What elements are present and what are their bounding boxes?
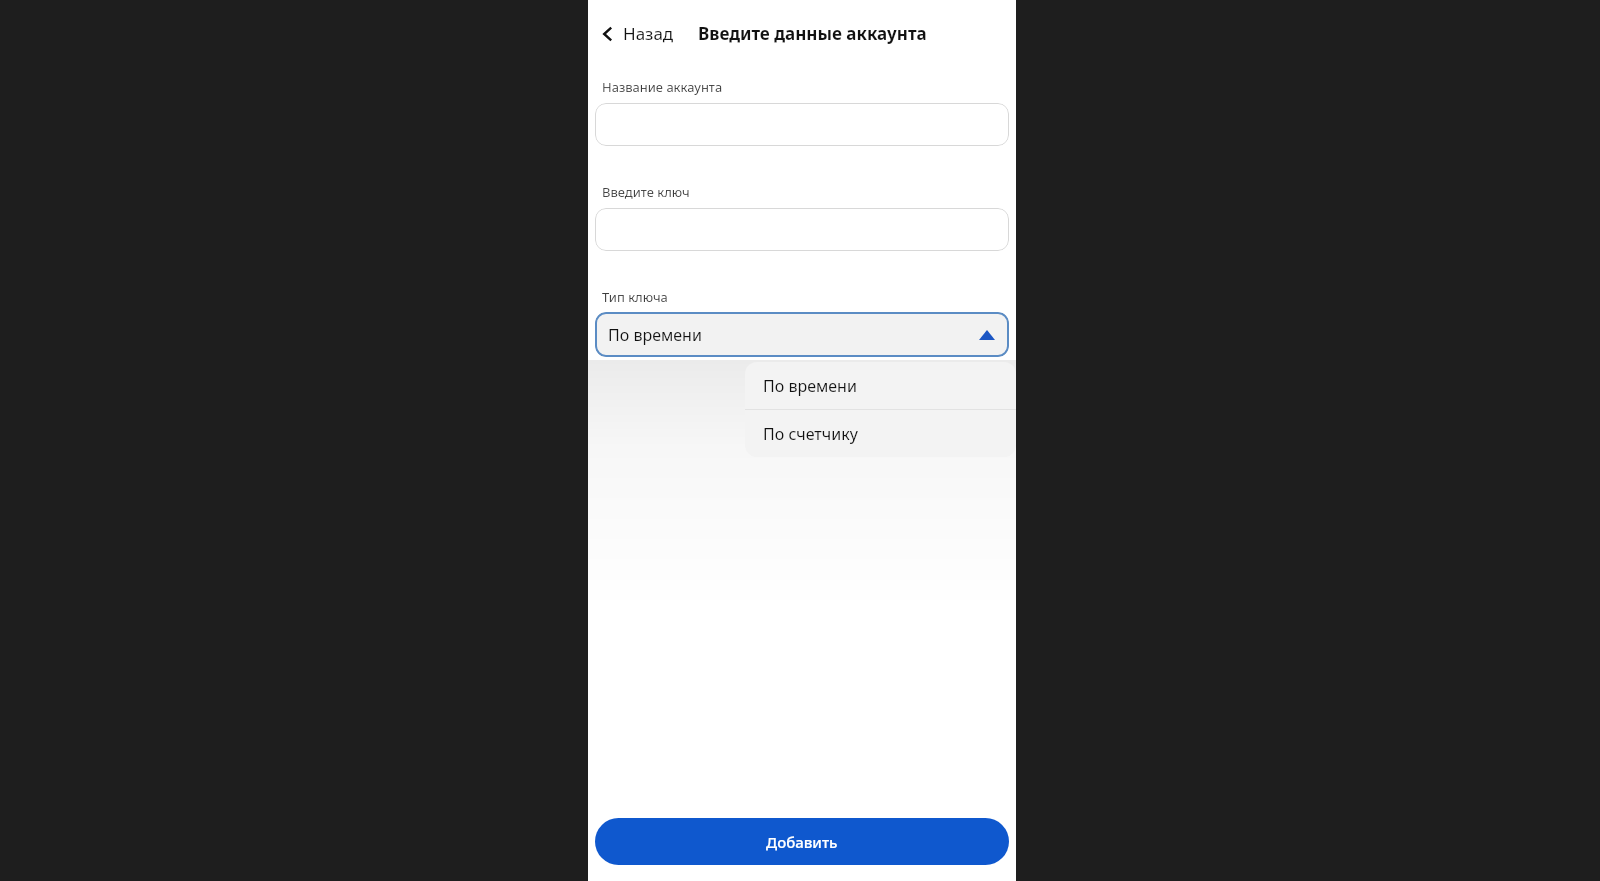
staticText: По времени <box>608 324 702 346</box>
staticText: Добавить <box>766 832 838 852</box>
button[interactable]: По времени <box>745 362 1016 409</box>
button[interactable] <box>595 208 1009 251</box>
staticText: Введите ключ <box>602 183 690 201</box>
button[interactable] <box>595 103 1009 146</box>
staticText: По счетчику <box>763 423 858 445</box>
other: Collapse key type list <box>979 330 995 340</box>
button[interactable]: По времени <box>595 312 1009 357</box>
staticText: Назад <box>623 22 674 45</box>
button[interactable]: Назад <box>594 16 680 51</box>
staticText: Тип ключа <box>602 288 668 306</box>
staticText: Название аккаунта <box>602 78 723 96</box>
button[interactable]: Добавить <box>595 818 1009 865</box>
button[interactable]: По счетчику <box>745 410 1016 457</box>
staticText: По времени <box>763 375 857 397</box>
staticText: Введите данные аккаунта <box>698 22 927 45</box>
